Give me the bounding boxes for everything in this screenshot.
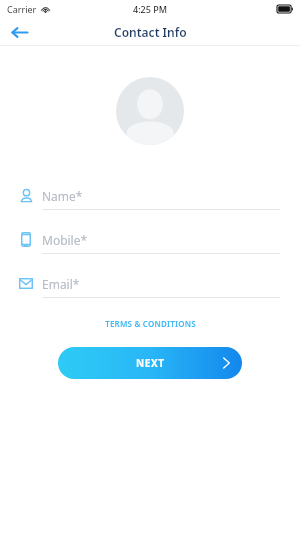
staticText: 4:25 PM [133,3,167,15]
button[interactable]: Email* [0,275,300,298]
staticText: NEXT [136,356,165,370]
button[interactable]: NEXT [58,347,242,379]
button[interactable]: Mobile* [0,231,300,254]
button[interactable]: Name* [0,187,300,210]
staticText: TERMS & CONDITIONS [105,318,196,329]
staticText: Carrier [7,3,37,15]
staticText: Mobile* [42,232,88,248]
staticText: Name* [42,188,83,204]
staticText: Contact Info [114,24,187,40]
button[interactable]: Back [4,18,34,46]
staticText: Email* [42,276,80,292]
button[interactable]: TERMS & CONDITIONS [99,315,202,332]
